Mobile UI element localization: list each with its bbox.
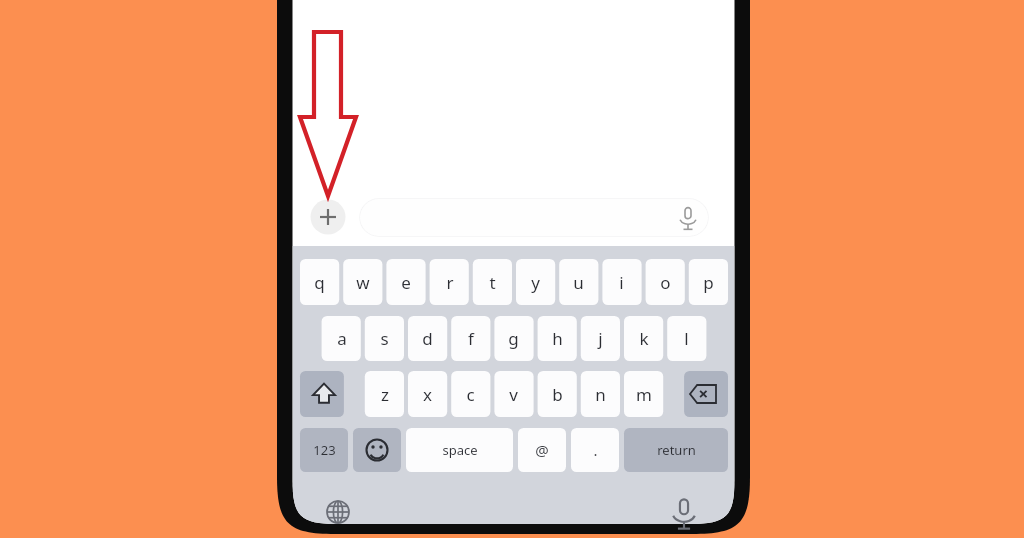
button[interactable]: Shift — [300, 371, 344, 417]
button[interactable] — [322, 316, 361, 361]
button[interactable] — [451, 371, 490, 417]
button[interactable] — [538, 316, 577, 361]
staticText: r — [446, 271, 454, 294]
button[interactable] — [494, 371, 533, 417]
staticText: v — [509, 383, 518, 406]
staticText: d — [422, 327, 433, 350]
button[interactable]: Add attachment — [311, 200, 346, 235]
button[interactable] — [430, 259, 469, 305]
button[interactable] — [602, 259, 641, 305]
staticText: i — [619, 271, 624, 294]
button[interactable] — [473, 259, 512, 305]
button[interactable] — [667, 316, 706, 361]
staticText: e — [401, 271, 411, 294]
button[interactable] — [516, 259, 555, 305]
staticText: f — [468, 327, 474, 350]
staticText: z — [381, 383, 389, 406]
staticText: space — [442, 441, 478, 459]
button[interactable] — [538, 371, 577, 417]
button[interactable]: Backspace — [684, 371, 728, 417]
button[interactable] — [300, 428, 348, 472]
button[interactable] — [689, 259, 728, 305]
staticText: l — [684, 327, 689, 350]
button[interactable]: Dictate — [668, 496, 700, 528]
staticText: t — [489, 271, 496, 294]
button[interactable]: Emoji — [353, 428, 401, 472]
staticText: y — [531, 271, 540, 294]
button[interactable] — [518, 428, 566, 472]
button[interactable] — [343, 259, 382, 305]
staticText: 123 — [313, 441, 336, 459]
staticText: g — [508, 327, 519, 350]
button[interactable] — [571, 428, 619, 472]
button[interactable] — [300, 259, 339, 305]
staticText: s — [380, 327, 389, 350]
button[interactable] — [494, 316, 533, 361]
staticText: . — [593, 440, 598, 460]
button[interactable] — [365, 371, 404, 417]
staticText: o — [660, 271, 671, 294]
button[interactable] — [365, 316, 404, 361]
staticText: x — [423, 383, 432, 406]
staticText: u — [573, 271, 584, 294]
button[interactable] — [624, 316, 663, 361]
button[interactable]: Voice input — [676, 205, 700, 229]
button[interactable] — [581, 316, 620, 361]
staticText: m — [636, 383, 652, 406]
staticText: q — [314, 271, 325, 294]
button[interactable] — [408, 316, 447, 361]
button[interactable]: Change keyboard language — [322, 496, 354, 528]
button[interactable] — [360, 199, 708, 236]
button[interactable] — [624, 371, 663, 417]
button[interactable] — [451, 316, 490, 361]
button[interactable] — [408, 371, 447, 417]
staticText: h — [552, 327, 563, 350]
staticText: k — [639, 327, 649, 350]
staticText: return — [657, 441, 696, 459]
staticText: j — [598, 327, 603, 350]
button[interactable] — [581, 371, 620, 417]
button[interactable] — [624, 428, 728, 472]
staticText: c — [466, 383, 475, 406]
staticText: p — [703, 271, 714, 294]
button[interactable] — [559, 259, 598, 305]
button[interactable] — [646, 259, 685, 305]
staticText: n — [595, 383, 606, 406]
staticText: a — [337, 327, 347, 350]
button[interactable] — [386, 259, 425, 305]
staticText: @ — [535, 440, 549, 460]
button[interactable] — [406, 428, 513, 472]
staticText: w — [356, 271, 370, 294]
staticText: b — [552, 383, 563, 406]
